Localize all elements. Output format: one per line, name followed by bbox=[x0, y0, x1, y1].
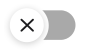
button[interactable]: Toggle off bbox=[0, 0, 90, 52]
